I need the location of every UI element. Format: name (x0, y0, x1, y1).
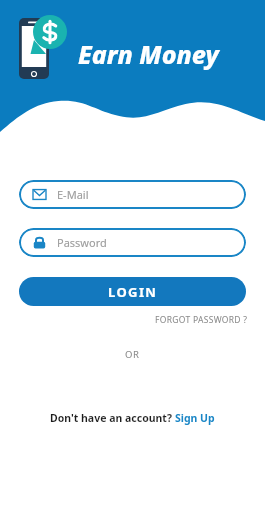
staticText: Earn Money (78, 37, 219, 71)
staticText: E-Mail (57, 187, 89, 202)
button[interactable]: E-Mail (19, 180, 246, 209)
staticText: Don't have an account? (50, 411, 175, 425)
other: Earn Money logo (17, 15, 75, 83)
staticText: OR (125, 348, 140, 361)
button[interactable]: Password (19, 228, 246, 257)
button[interactable]: FORGOT PASSWORD ? (138, 312, 248, 328)
staticText: FORGOT PASSWORD ? (155, 314, 248, 326)
button[interactable]: LOGIN (19, 277, 246, 306)
staticText: Password (57, 235, 107, 250)
staticText: LOGIN (108, 283, 158, 301)
button[interactable]: Sign Up (175, 411, 215, 425)
staticText: Sign Up (175, 411, 215, 425)
